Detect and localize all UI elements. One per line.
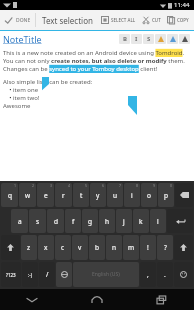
staticText: w — [25, 191, 31, 200]
staticText: You can not only create notes, but also … — [3, 57, 185, 65]
staticText: n — [112, 243, 117, 252]
button[interactable]: k — [133, 209, 149, 233]
staticText: o — [147, 191, 151, 200]
staticText: r — [62, 191, 65, 200]
staticText: . — [164, 270, 166, 279]
button[interactable]: a — [11, 209, 28, 233]
staticText: English (US) — [92, 271, 120, 278]
button[interactable]: l — [150, 209, 166, 233]
staticText: / — [46, 270, 49, 279]
button[interactable]: o — [141, 183, 157, 207]
staticText: b — [95, 243, 99, 252]
staticText: 1 — [14, 183, 17, 188]
staticText: l — [157, 217, 159, 226]
button[interactable]: I — [131, 34, 142, 44]
staticText: Awesome — [3, 102, 31, 110]
button[interactable]: Backspace — [175, 183, 193, 207]
button[interactable]: w — [19, 183, 36, 207]
staticText: 8 — [136, 183, 139, 188]
staticText: 3 — [50, 183, 53, 188]
staticText: B — [123, 35, 127, 43]
button[interactable]: S — [143, 34, 154, 44]
button[interactable]: ?123 — [1, 262, 21, 287]
staticText: p — [164, 191, 168, 200]
staticText: v — [78, 243, 82, 252]
staticText: DONE — [16, 17, 31, 24]
button[interactable]: n — [106, 235, 122, 260]
button[interactable]: Emoji — [174, 262, 193, 287]
staticText: 6 — [102, 183, 105, 188]
staticText: z — [27, 243, 31, 252]
staticText: i — [131, 191, 133, 200]
button[interactable]: j — [116, 209, 132, 233]
button[interactable]: y — [90, 183, 106, 207]
button[interactable]: DONE — [0, 10, 35, 30]
button[interactable]: c — [55, 235, 71, 260]
button[interactable]: . — [157, 262, 173, 287]
staticText: ?123 — [6, 272, 16, 278]
button[interactable]: Recents — [129, 289, 194, 310]
button[interactable]: Back — [0, 289, 64, 310]
button[interactable]: / — [39, 262, 55, 287]
staticText: :-) — [28, 272, 33, 278]
button[interactable]: NoteTitle — [3, 33, 42, 45]
staticText: j — [123, 217, 125, 226]
staticText: s — [36, 217, 40, 226]
button[interactable]: Size up — [167, 34, 178, 44]
button[interactable]: v — [72, 235, 88, 260]
staticText: a — [18, 217, 22, 226]
staticText: I — [135, 35, 138, 43]
staticText: h — [105, 217, 110, 226]
staticText: u — [113, 191, 118, 200]
staticText: ? — [164, 243, 167, 252]
button[interactable]: z — [21, 235, 37, 260]
button[interactable]: Language — [56, 262, 72, 287]
button[interactable]: ? — [157, 235, 173, 260]
button[interactable]: p — [158, 183, 174, 207]
staticText: m — [128, 243, 135, 252]
button[interactable]: :-) — [22, 262, 38, 287]
button[interactable]: e — [37, 183, 54, 207]
button[interactable]: r — [55, 183, 72, 207]
staticText: 11:44 — [174, 1, 190, 9]
button[interactable]: m — [123, 235, 139, 260]
staticText: • item two! — [3, 94, 40, 102]
button[interactable]: q — [1, 183, 18, 207]
button[interactable]: i — [124, 183, 140, 207]
staticText: , — [147, 270, 149, 279]
staticText: c — [61, 243, 65, 252]
staticText: 5 — [85, 183, 88, 188]
button[interactable]: English (US) — [73, 262, 139, 287]
staticText: S — [147, 35, 151, 43]
button[interactable]: COPY — [164, 10, 192, 30]
button[interactable]: f — [65, 209, 81, 233]
button[interactable]: Shift — [174, 235, 193, 260]
button[interactable]: Shift — [1, 235, 20, 260]
button[interactable]: SELECT ALL — [98, 10, 139, 30]
button[interactable]: u — [107, 183, 123, 207]
button[interactable]: h — [99, 209, 115, 233]
button[interactable]: ! — [140, 235, 156, 260]
button[interactable]: t — [73, 183, 89, 207]
staticText: e — [44, 191, 48, 200]
button[interactable]: Highlight — [155, 34, 166, 44]
button[interactable]: b — [89, 235, 105, 260]
button[interactable]: , — [140, 262, 156, 287]
button[interactable]: Size down — [179, 34, 190, 44]
staticText: • item one — [3, 86, 39, 94]
button[interactable]: d — [47, 209, 64, 233]
staticText: 0 — [170, 183, 173, 188]
staticText: g — [88, 217, 92, 226]
staticText: 2 — [32, 183, 35, 188]
button[interactable]: s — [29, 209, 46, 233]
button[interactable]: Enter — [167, 209, 193, 233]
button[interactable]: Home — [64, 289, 129, 310]
staticText: 9 — [153, 183, 156, 188]
staticText: SELECT ALL — [111, 17, 136, 23]
staticText: d — [54, 217, 58, 226]
button[interactable]: CUT — [139, 10, 164, 30]
staticText: f — [72, 217, 75, 226]
button[interactable]: g — [82, 209, 98, 233]
button[interactable]: B — [119, 34, 130, 44]
button[interactable]: x — [38, 235, 54, 260]
